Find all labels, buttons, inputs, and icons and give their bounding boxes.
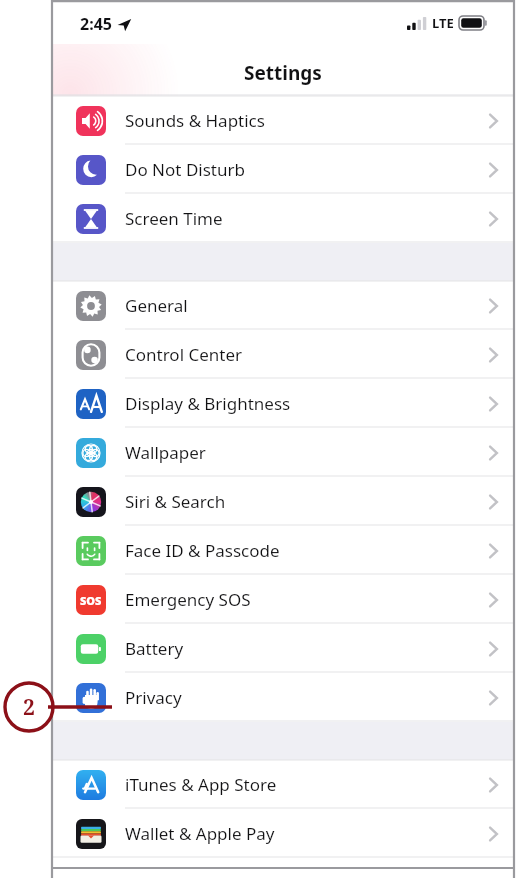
staticText: Control Center bbox=[125, 343, 243, 366]
button[interactable]: Display & Brightness bbox=[52, 379, 514, 428]
button[interactable]: Sounds & Haptics bbox=[52, 96, 514, 145]
staticText: Siri & Search bbox=[125, 490, 226, 513]
staticText: Screen Time bbox=[125, 207, 223, 230]
staticText: Settings bbox=[244, 60, 322, 86]
staticText: Wallpaper bbox=[125, 441, 206, 464]
staticText: LTE bbox=[432, 14, 454, 32]
staticText: 2:45 bbox=[80, 13, 112, 35]
staticText: Privacy bbox=[125, 686, 182, 709]
button[interactable]: Screen Time bbox=[52, 194, 514, 243]
staticText: iTunes & App Store bbox=[125, 773, 277, 796]
button[interactable]: Face ID & Passcode bbox=[52, 526, 514, 575]
staticText: SOS bbox=[80, 593, 102, 608]
button[interactable]: SOS bbox=[52, 575, 514, 624]
staticText: Face ID & Passcode bbox=[125, 539, 280, 562]
staticText: Do Not Disturb bbox=[125, 158, 245, 181]
button[interactable]: Siri & Search bbox=[52, 477, 514, 526]
button[interactable]: Battery bbox=[52, 624, 514, 673]
staticText: Sounds & Haptics bbox=[125, 109, 265, 132]
button[interactable]: Wallpaper bbox=[52, 428, 514, 477]
button[interactable]: Do Not Disturb bbox=[52, 145, 514, 194]
button[interactable]: iTunes & App Store bbox=[52, 760, 514, 809]
staticText: 2 bbox=[23, 693, 35, 722]
button[interactable]: General bbox=[52, 281, 514, 330]
button[interactable]: Wallet & Apple Pay bbox=[52, 809, 514, 858]
staticText: Battery bbox=[125, 637, 184, 660]
button[interactable]: Control Center bbox=[52, 330, 514, 379]
staticText: General bbox=[125, 294, 188, 317]
button[interactable]: Privacy bbox=[52, 673, 514, 722]
staticText: Display & Brightness bbox=[125, 392, 291, 415]
staticText: Emergency SOS bbox=[125, 588, 251, 611]
staticText: Wallet & Apple Pay bbox=[125, 822, 275, 845]
